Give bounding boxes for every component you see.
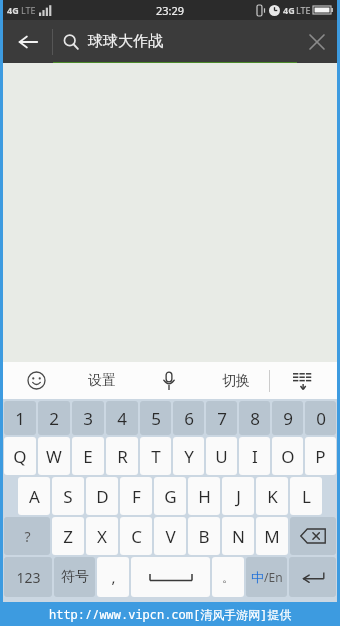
- staticText: W: [46, 445, 62, 468]
- button[interactable]: 1: [4, 401, 36, 435]
- staticText: B: [198, 525, 210, 548]
- button[interactable]: A: [18, 477, 50, 515]
- button[interactable]: Backspace: [290, 517, 336, 555]
- staticText: ,: [111, 567, 116, 587]
- staticText: R: [117, 445, 128, 468]
- staticText: K: [267, 485, 278, 508]
- button[interactable]: 9: [272, 401, 303, 435]
- staticText: E: [83, 445, 93, 468]
- staticText: T: [151, 445, 161, 468]
- staticText: 切换: [222, 372, 250, 390]
- staticText: D: [96, 485, 109, 508]
- staticText: O: [281, 445, 295, 468]
- button[interactable]: X: [86, 517, 118, 555]
- button[interactable]: L: [290, 477, 322, 515]
- button[interactable]: ?: [4, 517, 50, 555]
- staticText: 4G: [283, 4, 295, 16]
- button[interactable]: T: [140, 437, 171, 475]
- button[interactable]: 5: [140, 401, 171, 435]
- staticText: 4: [117, 407, 127, 430]
- button[interactable]: K: [256, 477, 288, 515]
- staticText: Y: [184, 445, 194, 468]
- button[interactable]: G: [154, 477, 186, 515]
- staticText: N: [232, 525, 245, 548]
- staticText: V: [165, 525, 176, 548]
- button[interactable]: ,: [97, 557, 129, 597]
- staticText: I: [252, 445, 258, 468]
- button[interactable]: R: [106, 437, 138, 475]
- button[interactable]: 设置: [69, 362, 135, 399]
- staticText: LTE: [21, 4, 36, 16]
- button[interactable]: E: [72, 437, 104, 475]
- staticText: A: [29, 485, 40, 508]
- button[interactable]: H: [188, 477, 220, 515]
- button[interactable]: Q: [4, 437, 36, 475]
- button[interactable]: O: [272, 437, 303, 475]
- staticText: LTE: [296, 4, 311, 16]
- staticText: C: [131, 525, 142, 548]
- button[interactable]: I: [239, 437, 270, 475]
- staticText: M: [264, 525, 280, 548]
- button[interactable]: D: [86, 477, 118, 515]
- staticText: 符号: [61, 568, 89, 586]
- button[interactable]: 球球大作战: [53, 20, 297, 63]
- staticText: 23:29: [156, 3, 185, 18]
- button[interactable]: F: [120, 477, 152, 515]
- button[interactable]: Space: [131, 557, 210, 597]
- staticText: 3: [83, 407, 93, 430]
- button[interactable]: Z: [52, 517, 84, 555]
- button[interactable]: Enter: [289, 557, 336, 597]
- staticText: S: [63, 485, 73, 508]
- staticText: 球球大作战: [88, 32, 163, 51]
- staticText: U: [215, 445, 228, 468]
- button[interactable]: Y: [173, 437, 204, 475]
- button[interactable]: 8: [239, 401, 270, 435]
- button[interactable]: J: [222, 477, 254, 515]
- button[interactable]: 2: [38, 401, 70, 435]
- staticText: 123: [16, 568, 41, 587]
- staticText: F: [132, 485, 141, 508]
- button[interactable]: 。: [212, 557, 244, 597]
- staticText: ?: [24, 527, 31, 546]
- staticText: 5: [151, 407, 161, 430]
- button[interactable]: 7: [206, 401, 237, 435]
- button[interactable]: N: [222, 517, 254, 555]
- button[interactable]: 123: [4, 557, 52, 597]
- staticText: 中: [251, 569, 264, 585]
- staticText: 4G: [7, 4, 19, 16]
- button[interactable]: C: [120, 517, 152, 555]
- staticText: 1: [15, 407, 25, 430]
- button[interactable]: 6: [173, 401, 204, 435]
- staticText: Z: [63, 525, 73, 548]
- button[interactable]: Clear: [297, 20, 337, 63]
- button[interactable]: 4: [106, 401, 138, 435]
- staticText: 7: [217, 407, 227, 430]
- button[interactable]: Back: [3, 20, 52, 63]
- staticText: X: [97, 525, 107, 548]
- button[interactable]: Switch language: [246, 557, 287, 597]
- button[interactable]: 切换: [202, 362, 269, 399]
- button[interactable]: Voice input: [135, 362, 202, 399]
- staticText: Q: [13, 445, 27, 468]
- button[interactable]: 3: [72, 401, 104, 435]
- button[interactable]: 符号: [54, 557, 95, 597]
- button[interactable]: Hide keyboard: [270, 362, 337, 399]
- button[interactable]: V: [154, 517, 186, 555]
- button[interactable]: P: [305, 437, 336, 475]
- button[interactable]: B: [188, 517, 220, 555]
- staticText: 2: [49, 407, 59, 430]
- staticText: 。: [222, 570, 234, 585]
- button[interactable]: W: [38, 437, 70, 475]
- button[interactable]: S: [52, 477, 84, 515]
- staticText: 6: [184, 407, 194, 430]
- button[interactable]: Emoji: [3, 362, 69, 399]
- button[interactable]: M: [256, 517, 288, 555]
- staticText: L: [302, 485, 311, 508]
- staticText: 0: [316, 407, 326, 430]
- button[interactable]: U: [206, 437, 237, 475]
- staticText: /En: [264, 569, 283, 585]
- staticText: 9: [283, 407, 293, 430]
- staticText: http://www.vipcn.com[清风手游网]提供: [49, 606, 292, 622]
- staticText: 设置: [88, 372, 116, 390]
- button[interactable]: 0: [305, 401, 336, 435]
